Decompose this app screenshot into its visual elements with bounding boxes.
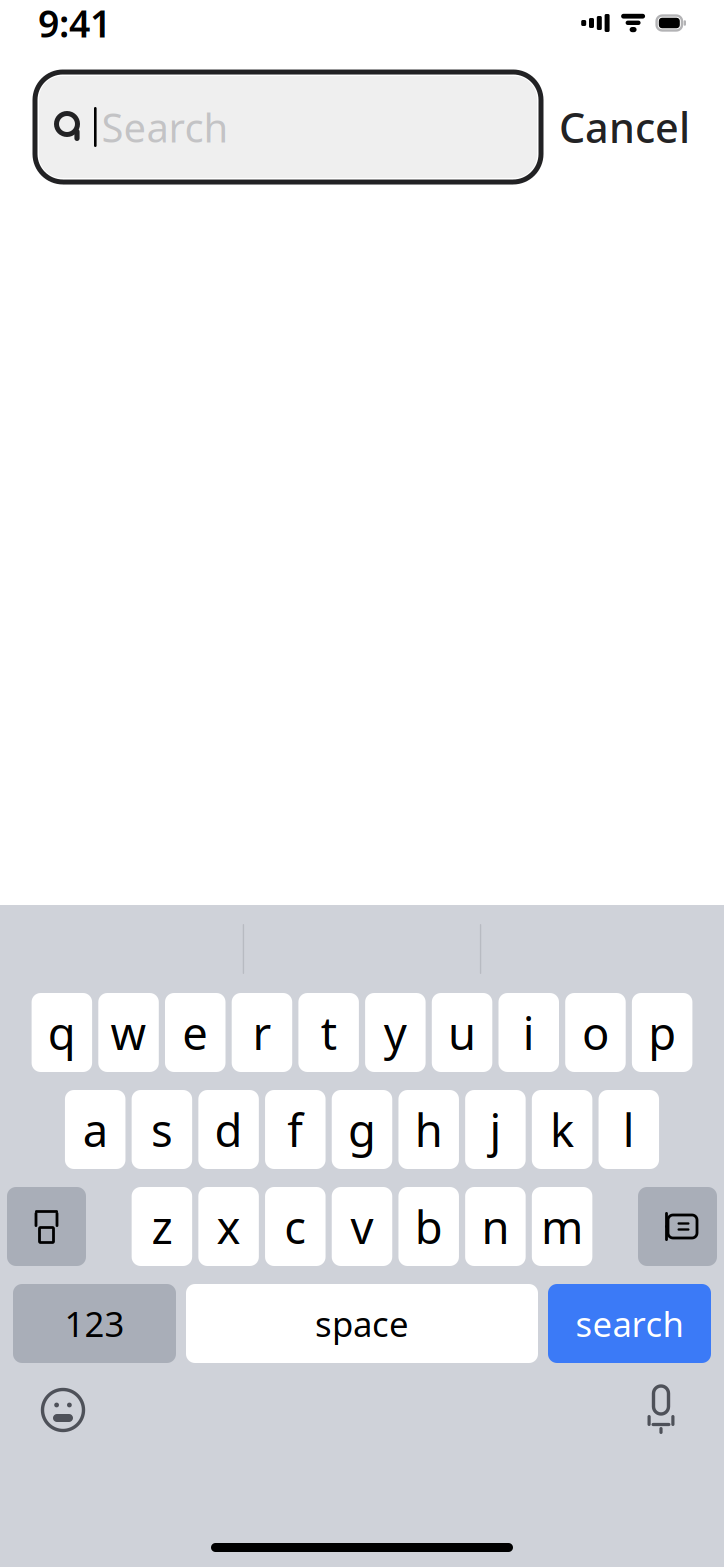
staticText: j <box>489 1099 501 1160</box>
staticText: m <box>541 1196 583 1257</box>
staticText: c <box>284 1196 306 1257</box>
button[interactable]: g <box>332 1090 392 1169</box>
button[interactable]: i <box>498 993 559 1072</box>
button[interactable]: f <box>265 1090 326 1169</box>
button[interactable]: z <box>132 1187 192 1266</box>
button[interactable]: space <box>186 1284 538 1363</box>
button[interactable]: v <box>332 1187 392 1266</box>
staticText: r <box>252 1002 271 1063</box>
staticText: z <box>151 1196 172 1257</box>
staticText: Cancel <box>559 100 690 154</box>
staticText: o <box>582 1002 609 1063</box>
button[interactable]: Search <box>35 72 541 182</box>
button[interactable]: s <box>132 1090 192 1169</box>
button[interactable]: n <box>465 1187 526 1266</box>
staticText: v <box>350 1196 373 1257</box>
staticText: t <box>321 1002 337 1063</box>
button[interactable]: x <box>198 1187 259 1266</box>
button[interactable]: l <box>598 1090 659 1169</box>
button[interactable]: a <box>65 1090 125 1169</box>
staticText: i <box>523 1002 535 1063</box>
button[interactable]: r <box>232 993 292 1072</box>
button[interactable]: Delete <box>638 1187 717 1266</box>
staticText: d <box>215 1099 243 1160</box>
staticText: f <box>287 1099 303 1160</box>
button[interactable]: Cancel <box>549 84 700 170</box>
staticText: s <box>151 1099 173 1160</box>
button[interactable]: c <box>265 1187 325 1266</box>
staticText: b <box>415 1196 443 1257</box>
staticText: w <box>111 1002 147 1063</box>
staticText: 123 <box>64 1300 124 1346</box>
button[interactable]: Shift <box>7 1187 86 1266</box>
staticText: k <box>550 1099 574 1160</box>
button[interactable]: 123 <box>13 1284 176 1363</box>
button[interactable]: e <box>165 993 225 1072</box>
button[interactable]: j <box>465 1090 526 1169</box>
staticText: l <box>623 1099 635 1160</box>
staticText: h <box>415 1099 443 1160</box>
button[interactable]: t <box>298 993 359 1072</box>
button[interactable]: u <box>432 993 492 1072</box>
staticText: x <box>217 1196 241 1257</box>
button[interactable]: d <box>198 1090 259 1169</box>
staticText: g <box>348 1099 376 1160</box>
staticText: n <box>481 1196 509 1257</box>
staticText: space <box>315 1300 409 1346</box>
button[interactable]: b <box>398 1187 459 1266</box>
staticText: Search <box>102 100 229 153</box>
button[interactable]: m <box>532 1187 592 1266</box>
staticText: y <box>384 1002 407 1063</box>
staticText: a <box>83 1099 108 1160</box>
staticText: 9:41 <box>38 0 111 48</box>
button[interactable]: Dictation <box>627 1379 695 1441</box>
staticText: u <box>448 1002 476 1063</box>
button[interactable]: y <box>365 993 426 1072</box>
button[interactable]: w <box>98 993 159 1072</box>
button[interactable]: o <box>565 993 626 1072</box>
button[interactable]: Emoji <box>29 1379 97 1441</box>
staticText: q <box>48 1002 76 1063</box>
button[interactable]: k <box>532 1090 592 1169</box>
staticText: e <box>182 1002 208 1063</box>
button[interactable]: p <box>632 993 692 1072</box>
staticText: search <box>575 1300 683 1346</box>
button[interactable]: search <box>548 1284 711 1363</box>
button[interactable]: h <box>398 1090 459 1169</box>
button[interactable]: q <box>32 993 92 1072</box>
staticText: p <box>648 1002 676 1063</box>
